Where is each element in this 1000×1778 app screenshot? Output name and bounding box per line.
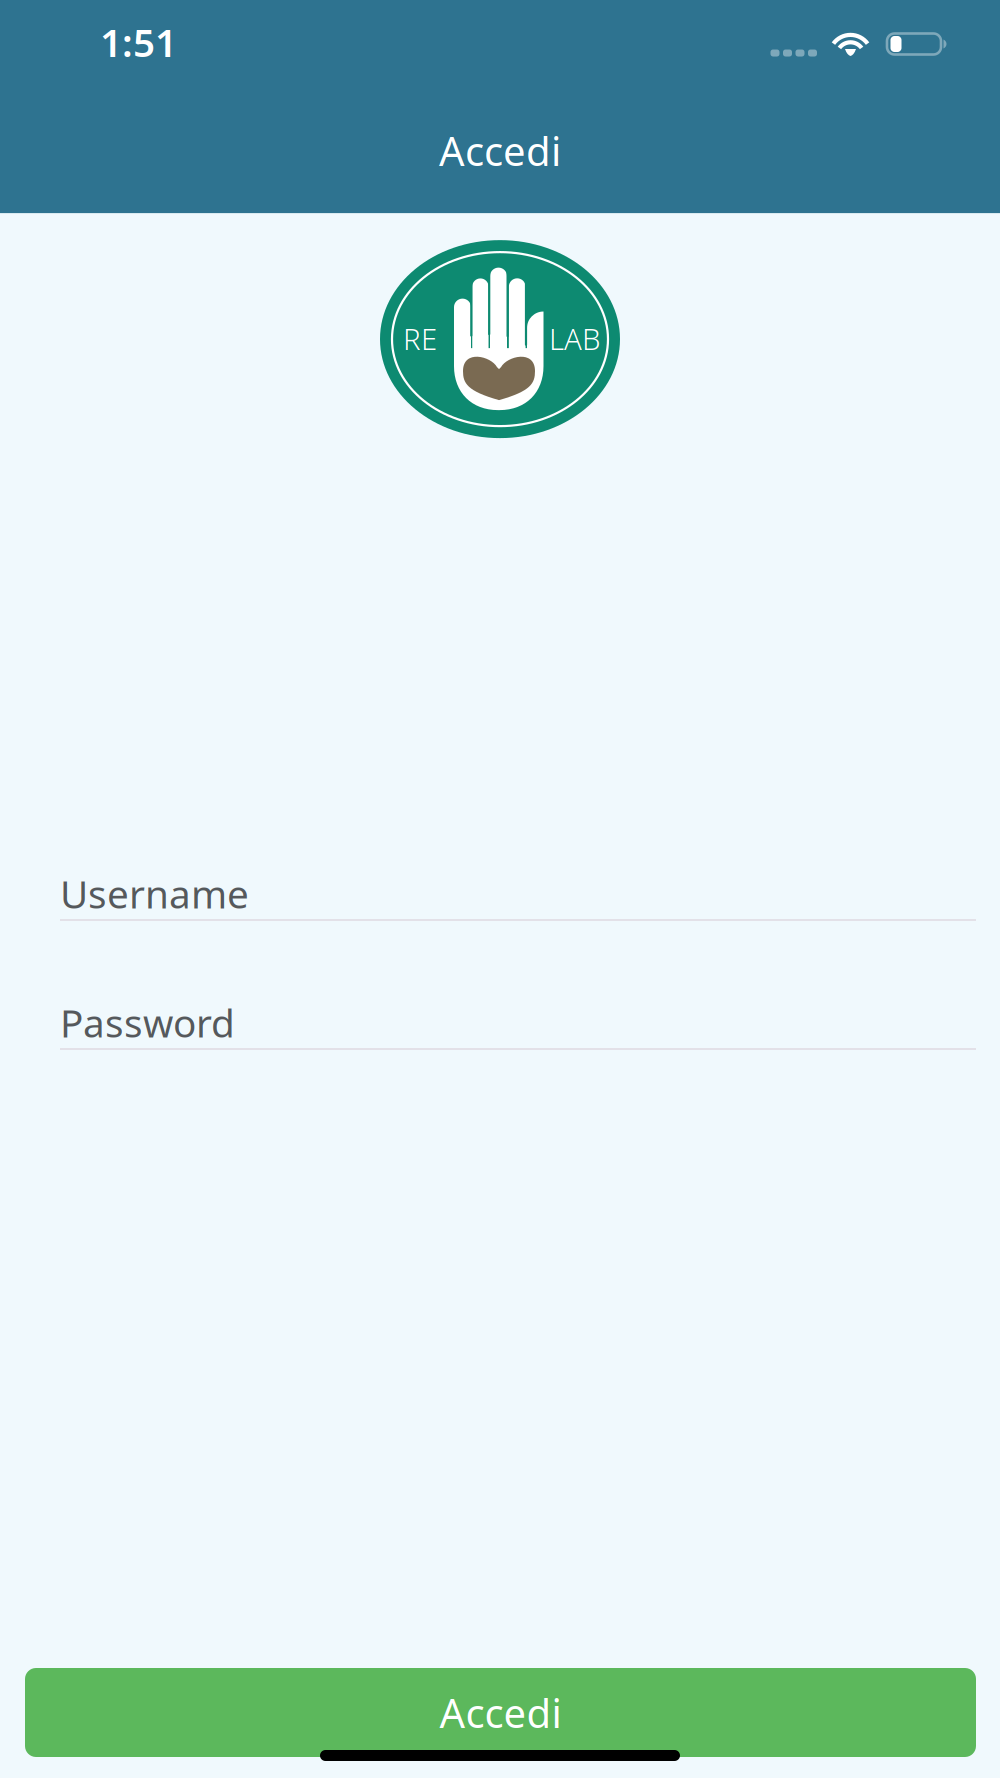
button[interactable]: Accedi [25, 1668, 976, 1757]
staticText: Username [60, 868, 249, 919]
staticText: Password [60, 997, 235, 1048]
staticText: Accedi [439, 1686, 561, 1739]
staticText: LAB [549, 319, 601, 358]
staticText: RE [403, 319, 437, 358]
staticText: Accedi [439, 124, 561, 177]
staticText: 1:51 [100, 16, 177, 68]
